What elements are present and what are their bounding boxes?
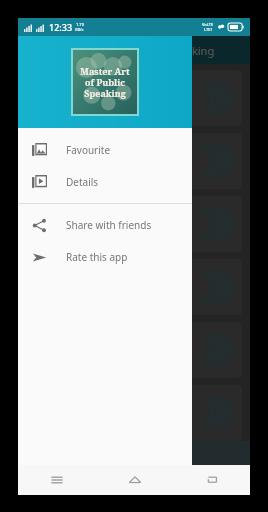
button[interactable]: Details	[18, 166, 192, 198]
staticText: Share with friends	[66, 218, 152, 232]
button[interactable]	[26, 259, 242, 315]
staticText: Details	[66, 175, 99, 189]
staticText: LTE1	[204, 27, 213, 32]
staticText: Master Art of Public Speaking	[80, 65, 130, 99]
button[interactable]: Recent apps	[18, 465, 96, 495]
button[interactable]: Share with friends	[18, 209, 192, 241]
staticText: VoLTE	[202, 22, 214, 27]
button[interactable]: Rate this app	[18, 241, 192, 273]
staticText: 12:33	[49, 21, 73, 33]
button[interactable]	[26, 196, 242, 252]
button[interactable]: Favourite	[18, 134, 192, 166]
staticText: Master Art of Public Speaking	[62, 43, 215, 58]
button[interactable]	[26, 322, 242, 378]
button[interactable]: Back	[173, 465, 250, 495]
button[interactable]: Public speaking can be daunting for many…	[26, 133, 242, 189]
button[interactable]: Home	[96, 465, 173, 495]
staticText: 1.70	[76, 22, 84, 27]
staticText: KB/s	[75, 27, 84, 32]
button[interactable]	[26, 385, 242, 441]
staticText: Public speaking can be daunting for many…	[34, 150, 186, 172]
button[interactable]	[26, 70, 242, 126]
staticText: Favourite	[66, 143, 111, 157]
staticText: Rate this app	[66, 250, 128, 264]
